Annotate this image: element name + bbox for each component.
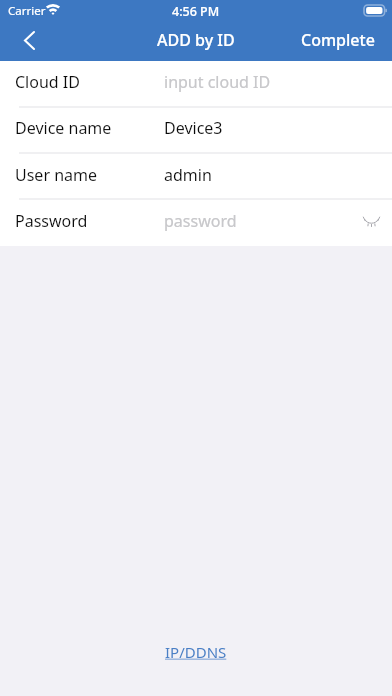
staticText: User name (15, 164, 98, 186)
button[interactable]: Back (7, 18, 51, 62)
staticText: input cloud ID (164, 71, 271, 93)
button[interactable]: Complete (284, 21, 392, 59)
staticText: IP/DDNS (165, 642, 227, 662)
staticText: 4:56 PM (172, 3, 220, 20)
button[interactable]: Show password (352, 204, 390, 242)
staticText: Password (15, 210, 88, 232)
staticText: ADD by ID (157, 29, 235, 51)
staticText: Complete (301, 29, 375, 51)
button[interactable]: User name (0, 154, 392, 200)
button[interactable]: Cloud ID (0, 61, 392, 107)
button[interactable]: IP/DDNS (157, 637, 235, 667)
staticText: Device name (15, 117, 112, 139)
staticText: Cloud ID (15, 71, 80, 93)
staticText: Device3 (164, 117, 223, 139)
staticText: password (164, 210, 237, 232)
staticText: admin (164, 164, 212, 186)
button[interactable]: Password (0, 200, 392, 246)
staticText: Carrier (8, 3, 46, 19)
button[interactable]: Device name (0, 107, 392, 153)
